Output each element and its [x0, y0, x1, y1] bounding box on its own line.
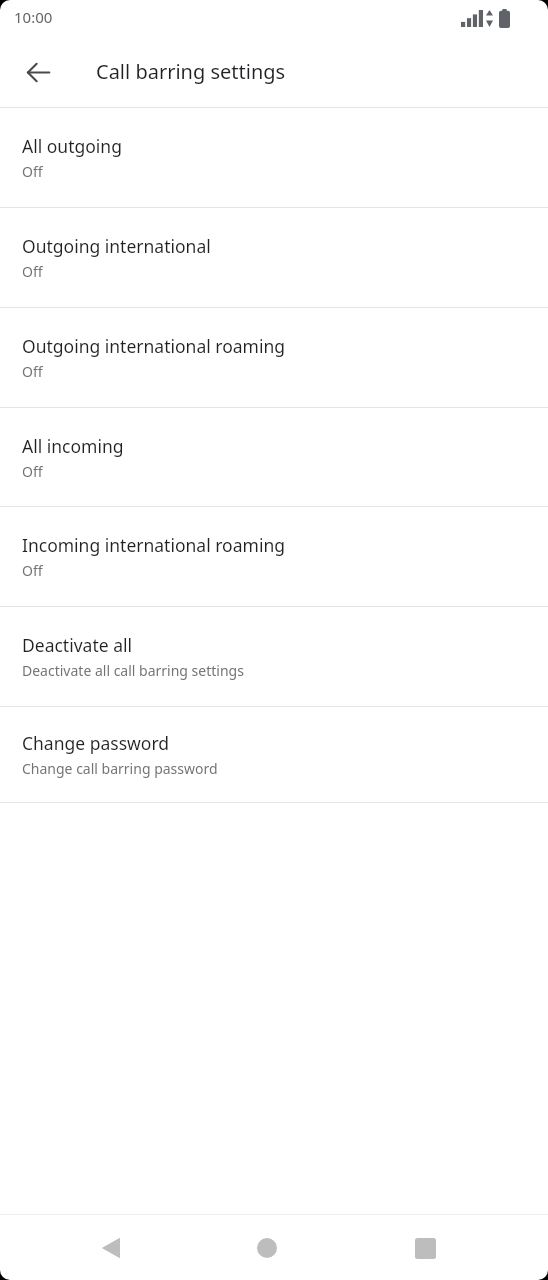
staticText: Off — [22, 362, 43, 381]
staticText: Outgoing international — [22, 234, 211, 258]
staticText: 10:00 — [14, 7, 53, 27]
staticText: Off — [22, 262, 43, 281]
button[interactable]: Incoming international roaming — [0, 507, 548, 606]
button[interactable]: Change password — [0, 707, 548, 802]
staticText: Outgoing international roaming — [22, 334, 286, 358]
staticText: Call barring settings — [96, 58, 286, 85]
staticText: All outgoing — [22, 134, 122, 158]
button[interactable]: Home — [243, 1224, 291, 1272]
staticText: Deactivate all — [22, 633, 132, 657]
staticText: Deactivate all call barring settings — [22, 661, 244, 680]
staticText: Off — [22, 561, 43, 580]
button[interactable]: Outgoing international roaming — [0, 308, 548, 407]
button[interactable]: All incoming — [0, 408, 548, 506]
staticText: Change password — [22, 731, 170, 755]
button[interactable]: Deactivate all — [0, 607, 548, 706]
button[interactable]: Back — [86, 1224, 134, 1272]
button[interactable]: Back — [14, 48, 62, 96]
staticText: Incoming international roaming — [22, 533, 285, 557]
button[interactable]: Recent apps — [401, 1224, 449, 1272]
staticText: Off — [22, 462, 43, 481]
button[interactable]: All outgoing — [0, 108, 548, 207]
staticText: Off — [22, 162, 43, 181]
staticText: Change call barring password — [22, 759, 218, 778]
button[interactable]: Outgoing international — [0, 208, 548, 307]
staticText: All incoming — [22, 434, 124, 458]
